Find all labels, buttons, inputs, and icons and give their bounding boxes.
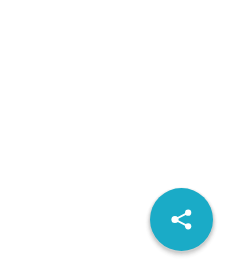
button[interactable]: Share: [150, 188, 213, 251]
